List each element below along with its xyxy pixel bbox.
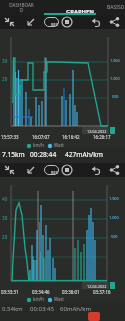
button[interactable]: DASHBOAR D [0,0,42,15]
staticText: 13.04.2022 [87,129,107,134]
staticText: GRAPHEN [66,8,95,16]
staticText: Watt [54,142,64,148]
staticText: 1.500 [110,58,120,63]
staticText: 16:16:42 [62,134,80,140]
button[interactable]: REC [44,17,59,27]
staticText: 30 [2,58,8,64]
staticText: km/h [33,142,45,148]
staticText: 16:07:07 [32,134,50,140]
button[interactable]: GRAPHEN [44,0,96,15]
staticText: 1.000 [109,215,119,220]
button[interactable] [3,16,16,28]
staticText: 03:37:16 [93,289,111,295]
button[interactable] [88,16,101,28]
staticText: km/h [33,296,45,302]
staticText: 12.04.2022 [87,284,107,289]
staticText: 03:34:46 [32,289,50,295]
button[interactable] [25,164,37,176]
button[interactable] [61,16,73,28]
staticText: 7.15km [2,150,25,159]
staticText: 500 [112,94,119,99]
staticText: 20 [2,76,8,82]
staticText: 00:28:44 [30,150,57,159]
staticText: 00:03:45 [30,305,54,313]
staticText: 1.000 [110,76,120,81]
button[interactable]: 7.15km [0,148,125,162]
staticText: 500 [111,234,118,239]
staticText: REC [51,22,59,27]
staticText: 15:57:33 [1,134,19,140]
button[interactable] [108,16,121,28]
staticText: Watt [54,296,64,302]
button[interactable] [61,164,73,176]
button[interactable]: BASISD [98,0,125,15]
button[interactable] [3,164,16,176]
staticText: 40 [2,196,8,202]
staticText: 60mAh/km [60,305,92,313]
button[interactable] [25,16,37,28]
button[interactable]: REC [44,165,59,175]
button[interactable] [108,164,121,176]
staticText: 0.54km [2,305,23,313]
staticText: 1.500 [109,196,119,201]
staticText: 427mAh/km [65,150,103,159]
staticText: BASISD [107,4,125,11]
button[interactable] [88,164,101,176]
button[interactable] [88,312,100,321]
staticText: DASHBOAR D [9,2,34,13]
staticText: 16:26:17 [93,134,111,140]
staticText: 03:33:31 [1,289,19,295]
staticText: 03:36:01 [62,289,80,295]
staticText: 20 [2,234,8,240]
staticText: 30 [2,215,8,221]
button[interactable]: 0.54km [0,303,125,321]
staticText: REC [51,170,59,175]
